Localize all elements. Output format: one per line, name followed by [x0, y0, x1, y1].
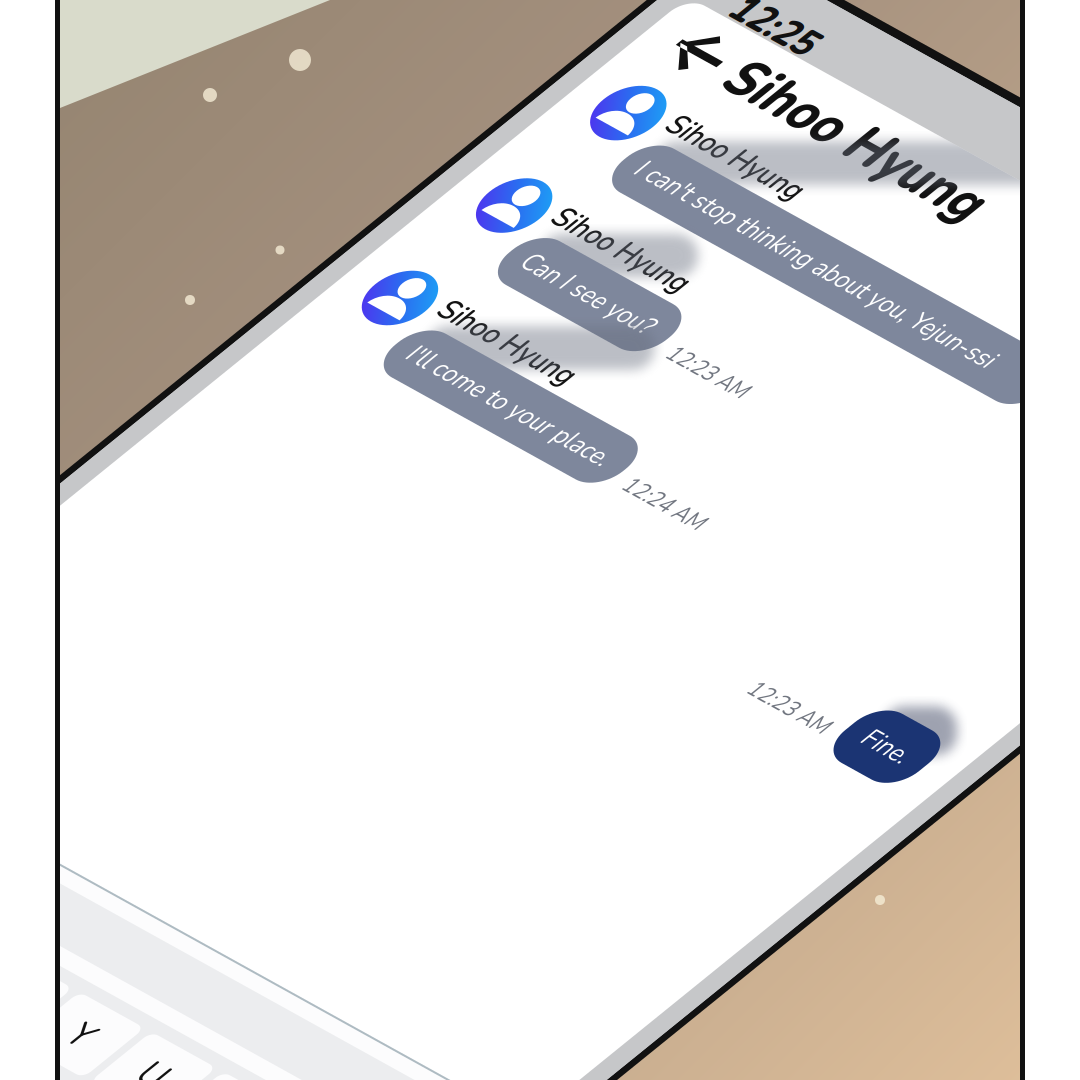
staticText: Sihoo Hyung	[944, 188, 1080, 252]
staticText: Sihoo Hyung	[946, 52, 1080, 168]
button[interactable]: Back	[828, 70, 920, 150]
staticText: I can't stop thinking about you, Yejun-s…	[974, 274, 1080, 330]
staticText: Sihoo Hyung	[944, 392, 1080, 456]
staticText: Can I see you?	[974, 478, 1080, 534]
staticText: 12:25	[846, 0, 1010, 62]
staticText: I'll come to your place.	[974, 682, 1080, 738]
staticText: Sihoo Hyung	[944, 596, 1080, 660]
